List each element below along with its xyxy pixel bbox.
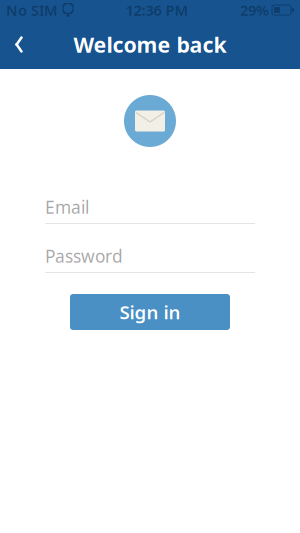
staticText: 12:36 PM xyxy=(125,0,188,20)
staticText: Sign in xyxy=(119,300,180,324)
staticText: Welcome back xyxy=(73,30,226,59)
staticText: No SIM xyxy=(6,0,58,20)
staticText: Email xyxy=(45,195,89,218)
button[interactable]: Sign in xyxy=(70,294,230,330)
button[interactable]: Back xyxy=(0,22,38,66)
staticText: Password xyxy=(45,244,123,267)
staticText: 29% xyxy=(240,0,269,20)
